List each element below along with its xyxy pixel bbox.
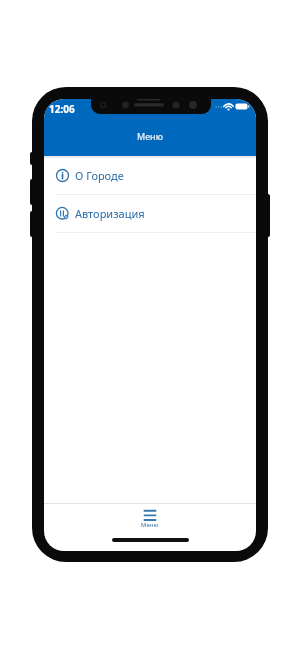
staticText: Меню xyxy=(137,130,163,142)
button[interactable]: О Городе xyxy=(44,156,256,194)
staticText: 12:06 xyxy=(49,102,75,115)
staticText: О Городе xyxy=(75,168,124,183)
staticText: Авторизация xyxy=(75,206,145,221)
button[interactable]: Авторизация xyxy=(44,194,256,232)
button[interactable]: Меню xyxy=(130,509,170,535)
staticText: Меню xyxy=(141,521,159,529)
